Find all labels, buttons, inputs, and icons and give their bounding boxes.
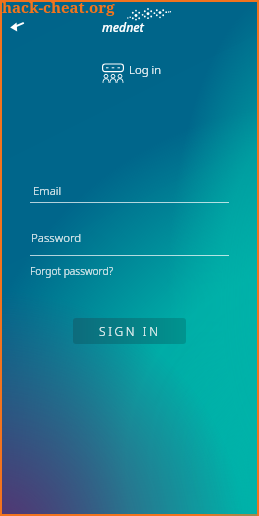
button[interactable]: SIGN IN <box>73 318 186 344</box>
staticText: SIGN IN <box>99 323 161 339</box>
button[interactable]: Password <box>30 230 229 257</box>
staticText: Forgot password? <box>30 264 113 278</box>
staticText: Password <box>31 230 82 246</box>
button[interactable]: Log in <box>102 62 162 84</box>
staticText: mednet <box>102 19 144 36</box>
staticText: Email <box>33 183 62 199</box>
staticText: Log in <box>129 62 162 78</box>
button[interactable]: Forgot password? <box>30 264 113 278</box>
button[interactable]: Email <box>30 182 229 204</box>
staticText: hack-cheat.org <box>2 0 115 17</box>
